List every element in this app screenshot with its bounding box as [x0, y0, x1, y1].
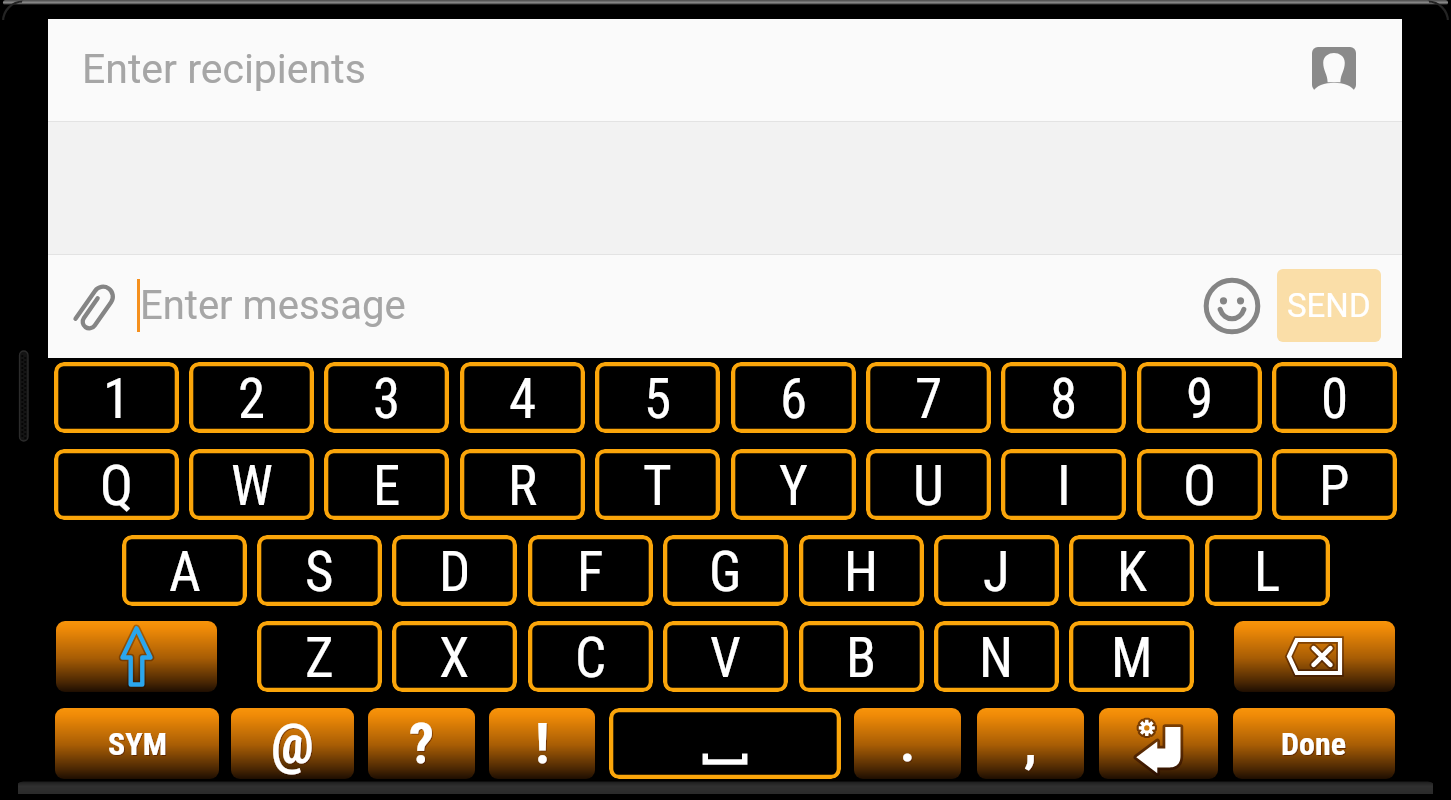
button[interactable]: Space	[609, 708, 841, 779]
staticText: C	[575, 626, 607, 690]
staticText: R	[508, 454, 538, 518]
staticText: SEND	[1287, 286, 1371, 325]
button[interactable]: 3	[324, 362, 449, 433]
button[interactable]: H	[799, 535, 924, 606]
button[interactable]: 5	[595, 362, 720, 433]
staticText: ?	[410, 712, 436, 778]
staticText: X	[439, 626, 470, 690]
staticText: H	[844, 540, 879, 604]
button[interactable]: V	[663, 621, 788, 692]
button[interactable]: P	[1272, 449, 1397, 520]
button[interactable]: G	[663, 535, 788, 606]
staticText: !	[535, 711, 550, 777]
staticText: !	[536, 712, 551, 778]
staticText: 8	[1050, 367, 1078, 431]
button[interactable]: I	[1001, 449, 1126, 520]
staticText: 3	[373, 367, 401, 431]
staticText: .	[901, 714, 917, 775]
button[interactable]: 0	[1272, 362, 1397, 433]
button[interactable]: SEND	[1277, 269, 1381, 342]
button[interactable]: SYM	[55, 708, 219, 779]
button[interactable]: Shift	[56, 621, 217, 692]
staticText: A	[169, 540, 201, 604]
button[interactable]: O	[1137, 449, 1262, 520]
staticText: Enter recipients	[82, 45, 366, 93]
staticText: G	[709, 540, 742, 604]
button[interactable]: R	[460, 449, 585, 520]
staticText: W	[231, 454, 273, 518]
button[interactable]: C	[528, 621, 653, 692]
staticText: 0	[1321, 367, 1349, 431]
button[interactable]: Pick contact	[1312, 47, 1356, 91]
button[interactable]: S	[257, 535, 382, 606]
button[interactable]: Y	[731, 449, 856, 520]
staticText: N	[979, 626, 1014, 690]
staticText: 1	[103, 367, 131, 431]
staticText: T	[643, 454, 672, 518]
button[interactable]: ?	[368, 708, 475, 779]
button[interactable]: .	[854, 708, 961, 779]
button[interactable]: K	[1069, 535, 1194, 606]
button[interactable]: 1	[54, 362, 179, 433]
button[interactable]: Emoji	[1203, 277, 1261, 335]
staticText: J	[983, 540, 1010, 604]
button[interactable]: L	[1205, 535, 1330, 606]
button[interactable]: Enter	[1099, 708, 1218, 779]
staticText: ,	[1024, 713, 1037, 774]
button[interactable]: M	[1069, 621, 1194, 692]
staticText: K	[1117, 540, 1147, 604]
staticText: S	[305, 540, 334, 604]
staticText: E	[373, 454, 401, 518]
staticText: 4	[509, 367, 537, 431]
staticText: @	[272, 712, 315, 778]
staticText: Done	[1281, 725, 1347, 763]
button[interactable]: 8	[1001, 362, 1126, 433]
button[interactable]: 4	[460, 362, 585, 433]
button[interactable]: E	[324, 449, 449, 520]
staticText: M	[1111, 626, 1153, 690]
button[interactable]: ,	[977, 708, 1084, 779]
staticText: Q	[100, 454, 134, 518]
staticText: I	[1057, 454, 1071, 518]
staticText: 6	[780, 367, 808, 431]
button[interactable]: Enter recipients	[48, 19, 1402, 121]
button[interactable]: U	[866, 449, 991, 520]
button[interactable]: 6	[731, 362, 856, 433]
staticText: ,	[1025, 714, 1038, 775]
staticText: L	[1254, 540, 1281, 604]
staticText: .	[900, 713, 916, 774]
staticText: O	[1183, 454, 1217, 518]
button[interactable]: @	[231, 708, 354, 779]
button[interactable]: D	[392, 535, 517, 606]
staticText: SYM	[109, 726, 168, 764]
button[interactable]: X	[392, 621, 517, 692]
button[interactable]: W	[189, 449, 314, 520]
staticText: B	[846, 626, 877, 690]
button[interactable]: 9	[1137, 362, 1262, 433]
staticText: F	[577, 540, 604, 604]
button[interactable]: J	[934, 535, 1059, 606]
staticText: U	[913, 454, 944, 518]
staticText: 9	[1186, 367, 1214, 431]
button[interactable]: N	[934, 621, 1059, 692]
staticText: P	[1319, 454, 1350, 518]
button[interactable]: F	[528, 535, 653, 606]
button[interactable]: T	[595, 449, 720, 520]
staticText: Z	[305, 626, 334, 690]
button[interactable]: Backspace	[1234, 621, 1395, 692]
staticText: 2	[238, 367, 266, 431]
button[interactable]: 2	[189, 362, 314, 433]
staticText: SYM	[108, 725, 167, 763]
staticText: Done	[1282, 726, 1348, 764]
staticText: ?	[409, 711, 435, 777]
staticText: D	[439, 540, 471, 604]
button[interactable]: Q	[54, 449, 179, 520]
staticText: 7	[915, 367, 943, 431]
button[interactable]: Done	[1233, 708, 1395, 779]
button[interactable]: B	[799, 621, 924, 692]
button[interactable]: A	[122, 535, 247, 606]
button[interactable]: 7	[866, 362, 991, 433]
button[interactable]: !	[489, 708, 595, 779]
button[interactable]: Attach	[69, 282, 121, 334]
button[interactable]: Z	[257, 621, 382, 692]
